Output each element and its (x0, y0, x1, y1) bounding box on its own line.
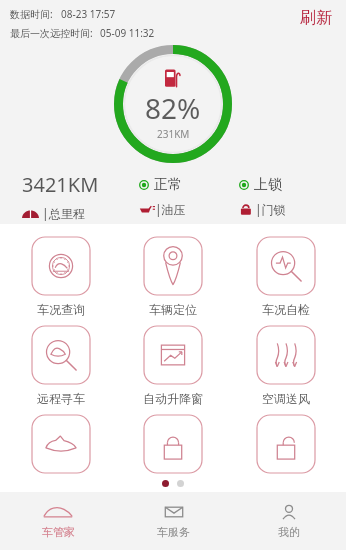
staticText: 08-23 17:57 (61, 7, 116, 21)
staticText: 自动升降窗 (143, 391, 203, 406)
button[interactable]: 我的 (231, 492, 346, 550)
staticText: 05-09 11:32 (100, 26, 155, 40)
staticText: 3421KM (22, 171, 99, 198)
staticText: 231KM (157, 127, 190, 141)
staticText: 车服务 (157, 525, 190, 539)
staticText: 上锁 (254, 176, 282, 194)
button[interactable]: 车服务 (116, 492, 231, 550)
staticText: 空调送风 (262, 391, 310, 406)
staticText: 车况自检 (262, 302, 310, 317)
staticText: 车管家 (42, 525, 75, 539)
staticText: 刷新 (300, 8, 332, 28)
button[interactable]: 车门上锁 (121, 415, 225, 473)
staticText: 正常 (154, 176, 182, 194)
button[interactable]: 刷新 (294, 7, 338, 29)
staticText: 远程寻车 (37, 391, 85, 406)
button[interactable]: 车辆控制 (9, 415, 113, 473)
staticText: |油压 (155, 201, 186, 217)
button[interactable]: 车门解锁 (234, 415, 338, 473)
button[interactable]: 车况自检 (234, 237, 338, 317)
button[interactable]: 空调送风 (234, 326, 338, 406)
staticText: 车辆定位 (149, 302, 197, 317)
button[interactable]: 远程寻车 (9, 326, 113, 406)
staticText: 最后一次远控时间: (10, 26, 93, 40)
staticText: 车况查询 (37, 302, 85, 317)
button[interactable]: 车管家 (0, 492, 116, 550)
staticText: 数据时间: (10, 7, 53, 21)
button[interactable]: 车况查询 (9, 237, 113, 317)
button[interactable]: 自动升降窗 (121, 326, 225, 406)
staticText: |总里程 (39, 205, 85, 221)
staticText: 82% (145, 89, 201, 127)
staticText: 我的 (278, 525, 300, 539)
staticText: |门锁 (255, 201, 286, 217)
button[interactable]: 车辆定位 (121, 237, 225, 317)
